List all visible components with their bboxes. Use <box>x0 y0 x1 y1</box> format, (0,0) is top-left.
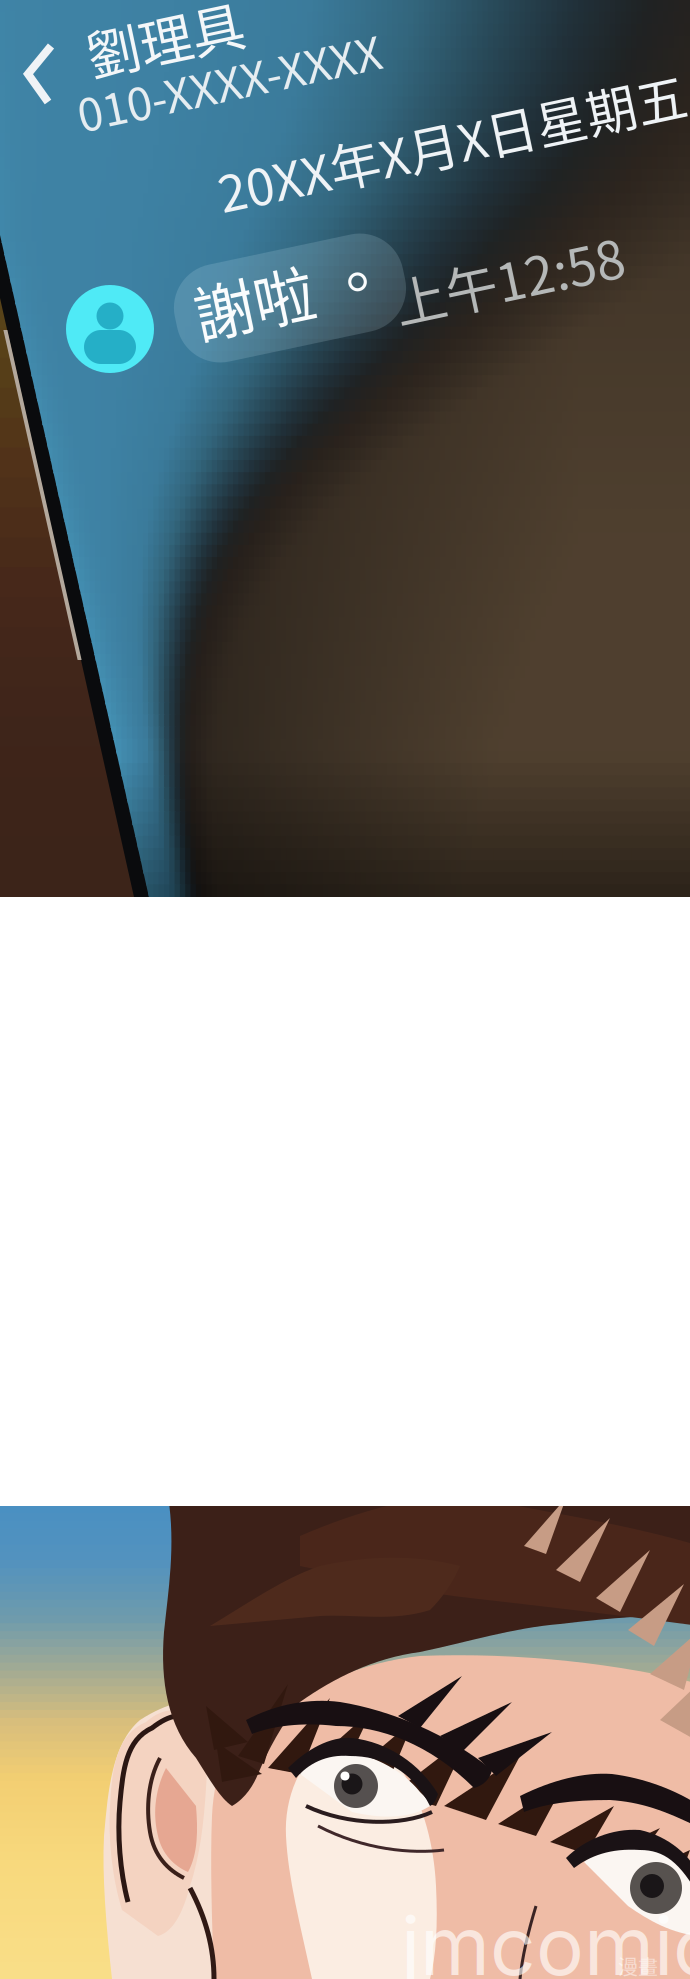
staticText: 謝啦 。 <box>191 249 388 337</box>
staticText: jmcomic <box>401 1898 690 1979</box>
staticText: 劉理具 <box>85 0 244 77</box>
staticText: 20XX年X月X日星期五 <box>213 105 690 179</box>
staticText: 漫畫 <box>618 1951 658 1979</box>
staticText: 010-XXXX-XXXX <box>74 48 384 114</box>
staticText: 上午12:58 <box>392 240 626 316</box>
